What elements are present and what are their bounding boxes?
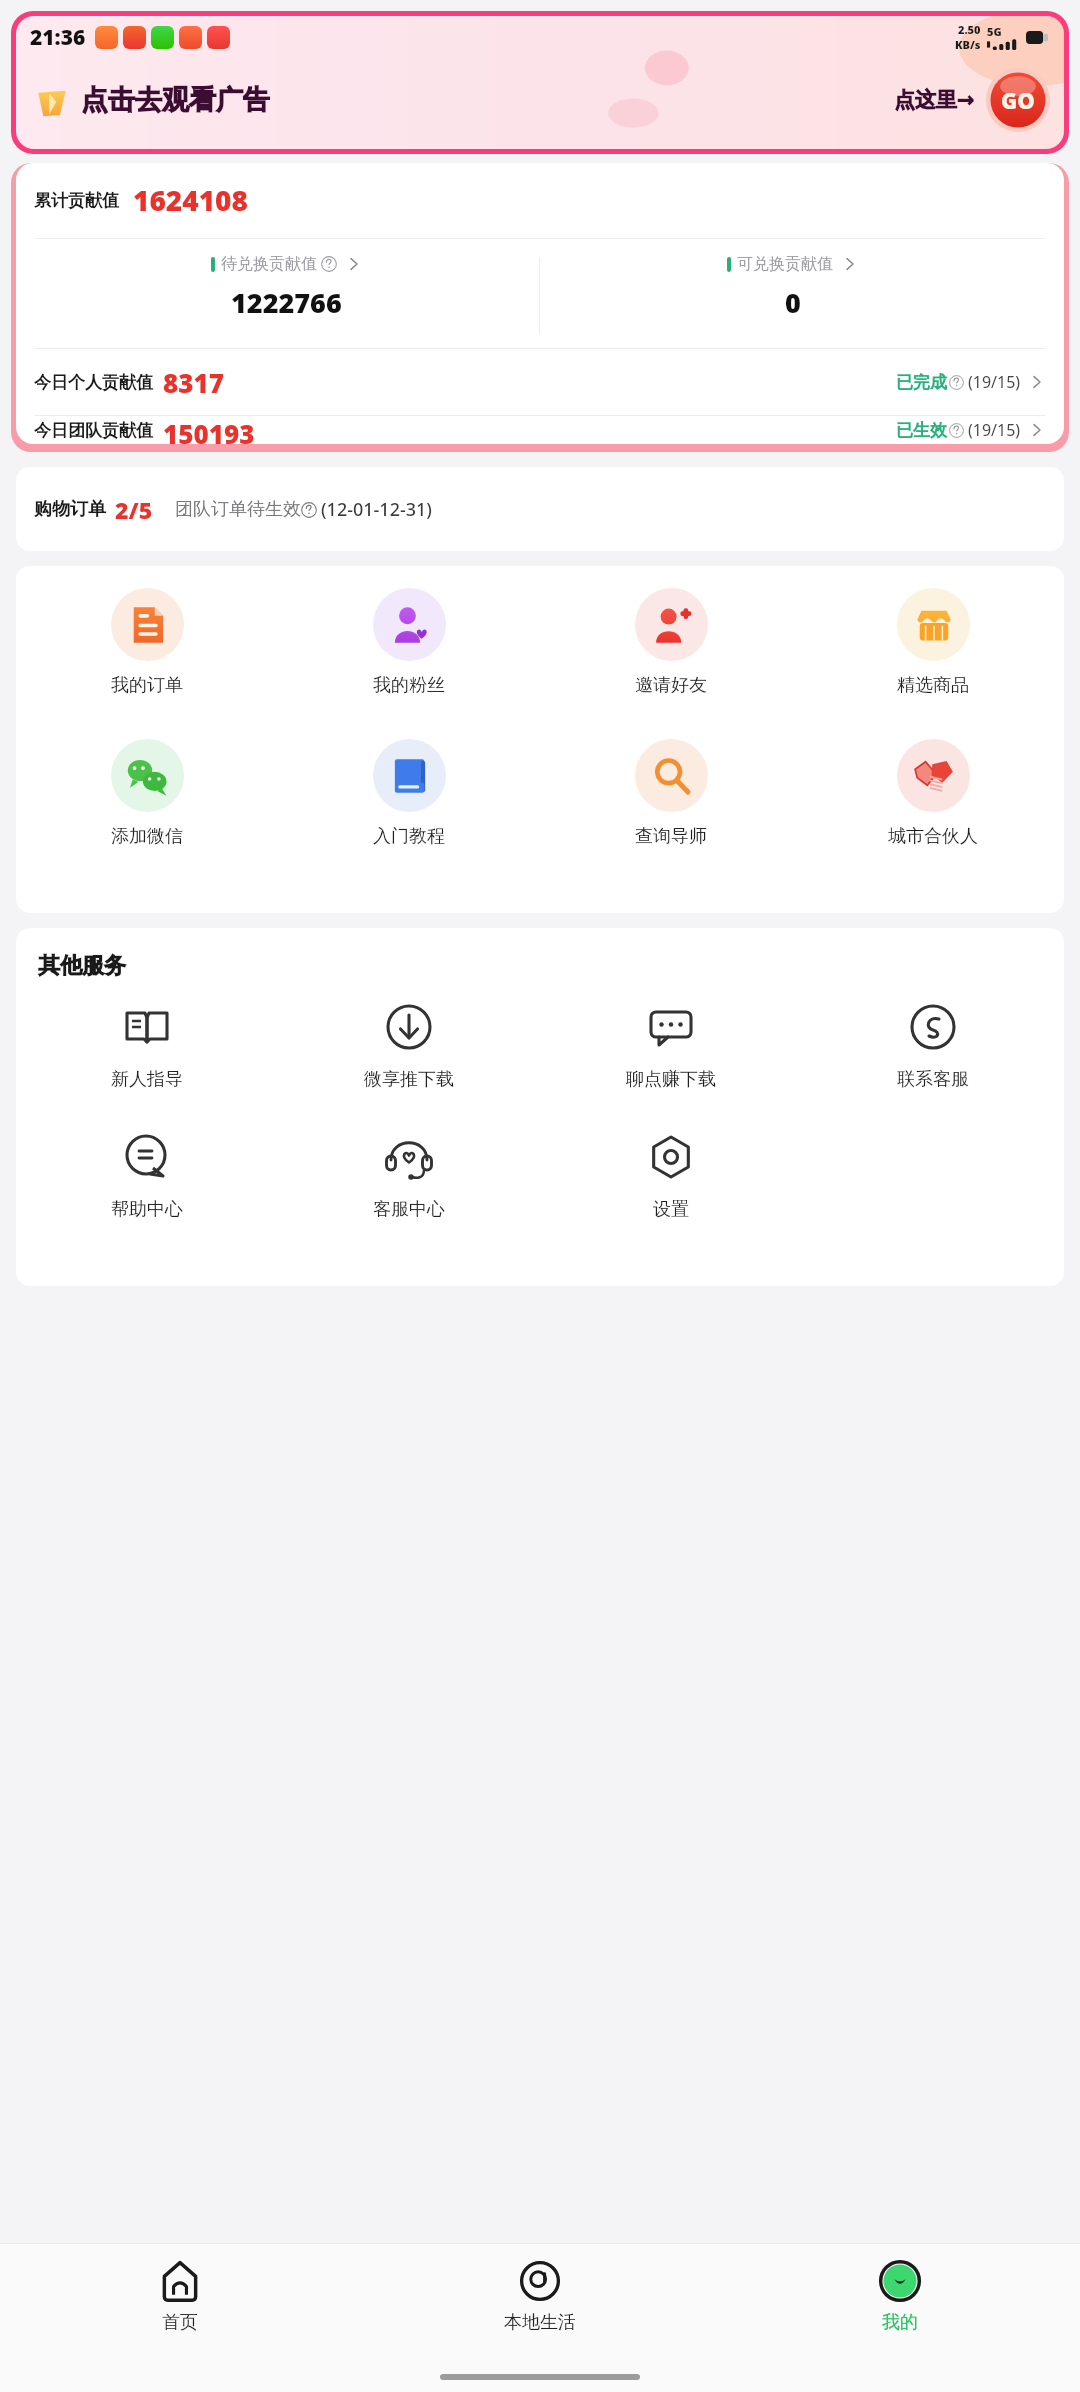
button[interactable]: 联系客服 bbox=[802, 1002, 1064, 1132]
staticText: 新人指导 bbox=[111, 1068, 183, 1091]
staticText: 城市合伙人 bbox=[888, 825, 978, 848]
staticText: 查询导师 bbox=[635, 825, 707, 848]
staticText: 其他服务 bbox=[38, 952, 126, 980]
button[interactable]: 城市合伙人 bbox=[802, 739, 1064, 890]
staticText: 添加微信 bbox=[111, 825, 183, 848]
staticText: 微享推下载 bbox=[364, 1068, 454, 1091]
button[interactable]: Home bbox=[0, 2244, 360, 2362]
staticText: 帮助中心 bbox=[111, 1198, 183, 1221]
button[interactable]: 聊点赚下载 bbox=[540, 1002, 802, 1132]
staticText: 8317 bbox=[163, 365, 224, 400]
button[interactable]: 微享推下载 bbox=[278, 1002, 540, 1132]
button[interactable]: 我的订单 bbox=[16, 588, 278, 739]
button[interactable]: 累计贡献值 bbox=[34, 181, 248, 219]
staticText: 本地生活 bbox=[504, 2311, 576, 2334]
staticText: 待兑换贡献值 bbox=[221, 254, 317, 274]
staticText: 精选商品 bbox=[897, 674, 969, 697]
button[interactable]: 帮助中心 bbox=[16, 1132, 278, 1262]
button[interactable]: 点击去观看广告 bbox=[16, 33, 1064, 149]
button[interactable]: 待兑换贡献值 bbox=[34, 254, 539, 337]
button[interactable]: 添加微信 bbox=[16, 739, 278, 890]
staticText: 购物订单 bbox=[34, 498, 106, 521]
staticText: (12-01-12-31) bbox=[321, 497, 432, 522]
staticText: 客服中心 bbox=[373, 1198, 445, 1221]
staticText: 已生效 bbox=[896, 420, 947, 441]
staticText: 150193 bbox=[163, 416, 255, 444]
staticText: 邀请好友 bbox=[635, 674, 707, 697]
staticText: 累计贡献值 bbox=[34, 190, 119, 211]
button[interactable]: 我的粉丝 bbox=[278, 588, 540, 739]
button[interactable]: 今日个人贡献值 bbox=[34, 349, 1046, 415]
button[interactable]: 入门教程 bbox=[278, 739, 540, 890]
button[interactable]: 邀请好友 bbox=[540, 588, 802, 739]
staticText: 2.50 bbox=[958, 22, 981, 37]
button[interactable]: 可兑换贡献值 bbox=[540, 254, 1046, 337]
staticText: 可兑换贡献值 bbox=[737, 254, 833, 274]
staticText: 团队订单待生效 bbox=[175, 498, 301, 521]
staticText: 点这里→ bbox=[894, 87, 975, 113]
staticText: 今日团队贡献值 bbox=[34, 420, 153, 441]
button[interactable]: 购物订单 bbox=[16, 467, 1064, 551]
button[interactable]: 今日团队贡献值 bbox=[34, 416, 1046, 444]
staticText: 点击去观看广告 bbox=[81, 83, 270, 117]
button[interactable]: Local life bbox=[360, 2244, 720, 2362]
staticText: 我的 bbox=[882, 2311, 918, 2334]
staticText: 0 bbox=[785, 284, 801, 321]
staticText: 首页 bbox=[162, 2311, 198, 2334]
button[interactable]: 查询导师 bbox=[540, 739, 802, 890]
staticText: 今日个人贡献值 bbox=[34, 372, 153, 393]
staticText: 2/5 bbox=[115, 494, 153, 525]
staticText: 1624108 bbox=[133, 181, 248, 219]
button[interactable]: Mine bbox=[720, 2244, 1080, 2362]
staticText: 21:36 bbox=[30, 23, 86, 52]
staticText: 我的订单 bbox=[111, 674, 183, 697]
staticText: 入门教程 bbox=[373, 825, 445, 848]
staticText: 1222766 bbox=[231, 284, 342, 321]
staticText: 聊点赚下载 bbox=[626, 1068, 716, 1091]
button[interactable]: 精选商品 bbox=[802, 588, 1064, 739]
staticText: 设置 bbox=[653, 1198, 689, 1221]
staticText: (19/15) bbox=[968, 371, 1021, 393]
staticText: GO bbox=[1001, 85, 1035, 115]
button[interactable]: 新人指导 bbox=[16, 1002, 278, 1132]
button[interactable]: 客服中心 bbox=[278, 1132, 540, 1262]
button[interactable]: 设置 bbox=[540, 1132, 802, 1262]
staticText: KB/s bbox=[955, 37, 981, 52]
staticText: (19/15) bbox=[968, 419, 1021, 441]
staticText: 已完成 bbox=[896, 372, 947, 393]
staticText: 联系客服 bbox=[897, 1068, 969, 1091]
staticText: 我的粉丝 bbox=[373, 674, 445, 697]
staticText: 5G bbox=[987, 24, 1002, 39]
